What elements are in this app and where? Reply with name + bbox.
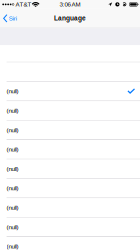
- staticText: (null): [7, 185, 19, 192]
- staticText: (null): [7, 107, 19, 114]
- button[interactable]: (null): [0, 82, 140, 101]
- button[interactable]: (null): [0, 198, 140, 218]
- staticText: Siri: [9, 15, 17, 22]
- button[interactable]: (null): [0, 140, 140, 159]
- button[interactable]: (null): [0, 121, 140, 140]
- staticText: (null): [7, 88, 19, 95]
- staticText: AT&T: [16, 1, 32, 8]
- button[interactable]: Siri: [0, 9, 20, 28]
- button[interactable]: (null): [0, 237, 140, 250]
- button[interactable]: (null): [0, 179, 140, 198]
- staticText: 3:06 AM: [59, 1, 80, 8]
- staticText: (null): [7, 165, 19, 172]
- staticText: (null): [7, 127, 19, 133]
- staticText: Language: [54, 15, 86, 22]
- staticText: (null): [7, 224, 19, 230]
- button[interactable]: (null): [0, 218, 140, 237]
- staticText: (null): [7, 243, 19, 250]
- staticText: (null): [7, 146, 19, 153]
- button[interactable]: (null): [0, 159, 140, 179]
- button[interactable]: [0, 62, 140, 82]
- staticText: (null): [7, 204, 19, 211]
- button[interactable]: (null): [0, 101, 140, 121]
